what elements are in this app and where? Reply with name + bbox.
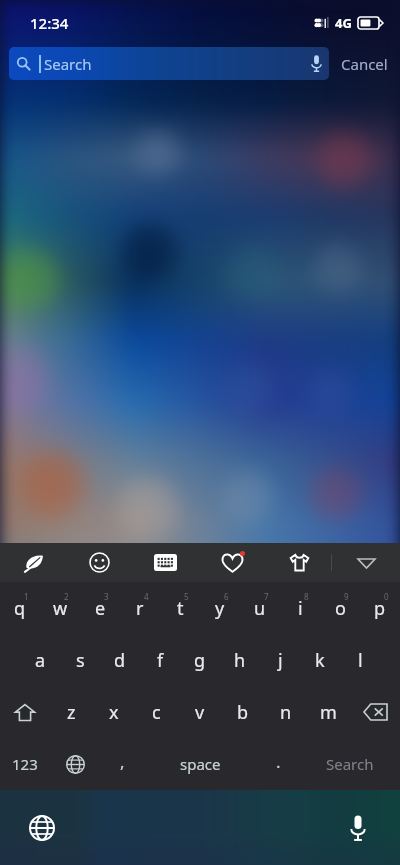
button[interactable]: h xyxy=(220,634,260,686)
button[interactable]: a xyxy=(20,634,60,686)
staticText: c xyxy=(152,700,161,725)
staticText: r xyxy=(136,596,144,621)
button[interactable]: . xyxy=(256,738,300,790)
staticText: Search xyxy=(326,754,374,774)
button[interactable]: 0 xyxy=(360,582,400,634)
button[interactable]: Theme xyxy=(0,543,66,582)
staticText: j xyxy=(278,648,283,673)
staticText: space xyxy=(180,754,221,774)
staticText: f xyxy=(157,648,164,673)
button[interactable]: 9 xyxy=(320,582,360,634)
staticText: a xyxy=(35,648,46,673)
staticText: l xyxy=(358,648,363,673)
button[interactable]: f xyxy=(140,634,180,686)
staticText: Cancel xyxy=(341,54,388,74)
button[interactable]: Cancel xyxy=(329,47,400,80)
button[interactable]: space xyxy=(144,738,256,790)
button[interactable]: b xyxy=(221,686,264,738)
staticText: 4 xyxy=(144,591,149,602)
staticText: g xyxy=(194,648,206,673)
button[interactable]: 3 xyxy=(80,582,120,634)
staticText: 3 xyxy=(104,591,109,602)
staticText: 9 xyxy=(344,591,349,602)
button[interactable]: g xyxy=(180,634,220,686)
staticText: q xyxy=(14,596,26,621)
staticText: o xyxy=(335,596,346,621)
staticText: Search xyxy=(44,54,92,74)
button[interactable]: Voice search xyxy=(303,47,329,80)
button[interactable]: Stickers xyxy=(266,543,333,582)
button[interactable]: l xyxy=(340,634,380,686)
staticText: . xyxy=(276,750,281,773)
button[interactable]: j xyxy=(260,634,300,686)
button[interactable]: Collapse keyboard xyxy=(333,543,400,582)
button[interactable]: m xyxy=(307,686,350,738)
button[interactable]: Switch language xyxy=(50,738,100,790)
staticText: 12:34 xyxy=(30,13,69,33)
staticText: k xyxy=(315,648,325,673)
staticText: h xyxy=(234,648,246,673)
button[interactable]: 1 xyxy=(0,582,40,634)
staticText: 2 xyxy=(64,591,69,602)
button[interactable]: Backspace xyxy=(350,686,400,738)
button[interactable]: v xyxy=(178,686,221,738)
staticText: 7 xyxy=(264,591,269,602)
staticText: s xyxy=(76,648,85,673)
button[interactable]: Switch language xyxy=(22,808,62,848)
button[interactable]: s xyxy=(60,634,100,686)
staticText: x xyxy=(109,700,119,725)
button[interactable]: Keyboard xyxy=(132,543,199,582)
button[interactable]: 123 xyxy=(0,738,50,790)
button[interactable]: d xyxy=(100,634,140,686)
staticText: b xyxy=(237,700,249,725)
button[interactable]: c xyxy=(135,686,178,738)
button[interactable]: Voice input xyxy=(338,808,378,848)
button[interactable]: Search xyxy=(300,738,400,790)
button[interactable]: 6 xyxy=(200,582,240,634)
button[interactable]: Favourites xyxy=(199,543,266,582)
staticText: n xyxy=(280,700,292,725)
staticText: 6 xyxy=(224,591,229,602)
staticText: 1 xyxy=(24,591,29,602)
staticText: w xyxy=(53,596,68,621)
staticText: m xyxy=(320,700,337,725)
button[interactable]: , xyxy=(100,738,144,790)
button[interactable]: z xyxy=(50,686,92,738)
button[interactable]: n xyxy=(264,686,307,738)
button[interactable]: k xyxy=(300,634,340,686)
staticText: 8 xyxy=(304,591,309,602)
staticText: 4G xyxy=(335,14,352,32)
staticText: u xyxy=(254,596,266,621)
staticText: t xyxy=(177,596,184,621)
button[interactable]: 5 xyxy=(160,582,200,634)
button[interactable]: Emoji xyxy=(66,543,132,582)
staticText: d xyxy=(114,648,126,673)
button[interactable]: 2 xyxy=(40,582,80,634)
staticText: p xyxy=(374,596,386,621)
button[interactable]: 7 xyxy=(240,582,280,634)
staticText: z xyxy=(67,700,76,725)
staticText: , xyxy=(120,750,125,773)
staticText: y xyxy=(215,596,225,621)
staticText: i xyxy=(298,596,303,621)
button[interactable]: x xyxy=(92,686,135,738)
button[interactable]: Search xyxy=(9,47,329,80)
button[interactable]: 4 xyxy=(120,582,160,634)
staticText: 0 xyxy=(384,591,389,602)
button[interactable]: Shift xyxy=(0,686,50,738)
button[interactable]: 8 xyxy=(280,582,320,634)
staticText: e xyxy=(95,596,106,621)
staticText: 123 xyxy=(12,754,38,774)
staticText: v xyxy=(195,700,205,725)
staticText: 5 xyxy=(184,591,189,602)
